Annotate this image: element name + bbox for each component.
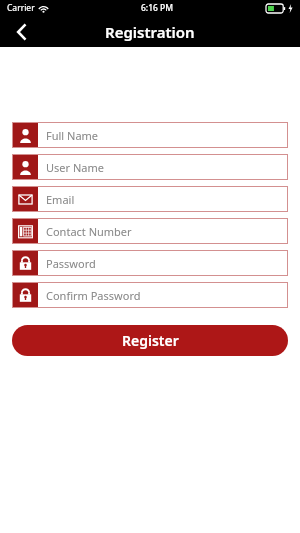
staticText: 6:16 PM — [141, 2, 174, 14]
staticText: Email — [46, 192, 75, 207]
staticText: User Name — [46, 160, 104, 175]
button[interactable]: User Name — [12, 154, 288, 180]
button[interactable]: Password — [12, 250, 288, 276]
button[interactable]: Back — [0, 16, 44, 47]
button[interactable]: Register — [12, 325, 288, 356]
button[interactable]: Full Name — [12, 122, 288, 148]
staticText: Registration — [105, 22, 195, 42]
staticText: Full Name — [46, 128, 99, 143]
staticText: Carrier — [7, 2, 35, 14]
button[interactable]: Email — [12, 186, 288, 212]
staticText: Password — [46, 256, 96, 271]
staticText: Register — [122, 331, 179, 350]
button[interactable]: Confirm Password — [12, 282, 288, 308]
button[interactable]: Contact Number — [12, 218, 288, 244]
staticText: Confirm Password — [46, 288, 141, 303]
staticText: Contact Number — [46, 224, 132, 239]
